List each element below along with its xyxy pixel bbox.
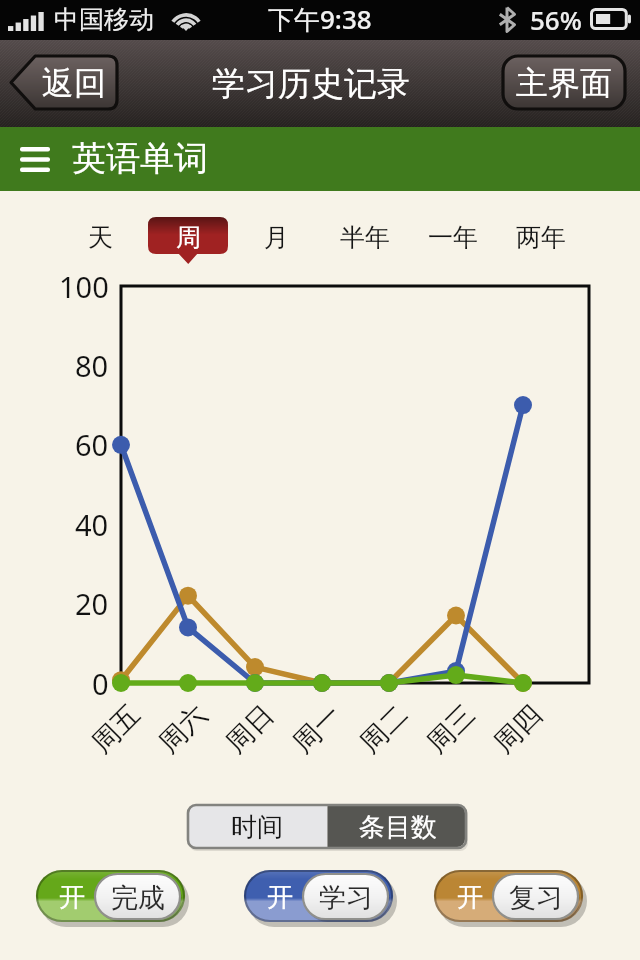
staticText: 中国移动 bbox=[54, 4, 154, 35]
button[interactable]: 主界面 bbox=[501, 54, 627, 111]
staticText: 返回 bbox=[42, 63, 106, 103]
button[interactable]: 月 bbox=[244, 217, 308, 264]
staticText: 下午9:38 bbox=[268, 1, 372, 37]
button[interactable]: 条目数 bbox=[327, 804, 468, 850]
staticText: 条目数 bbox=[359, 811, 437, 844]
button[interactable]: Menu bbox=[8, 132, 62, 186]
button[interactable]: 两年 bbox=[509, 217, 573, 264]
staticText: 复习 bbox=[509, 881, 563, 915]
button[interactable]: 开 bbox=[244, 870, 397, 926]
staticText: 主界面 bbox=[516, 63, 612, 103]
staticText: 时间 bbox=[231, 811, 283, 844]
staticText: 一年 bbox=[428, 222, 478, 253]
staticText: 周 bbox=[176, 222, 201, 253]
button[interactable]: 天 bbox=[68, 217, 132, 264]
button[interactable]: 半年 bbox=[333, 217, 397, 264]
staticText: 开 bbox=[59, 881, 85, 914]
staticText: 月 bbox=[264, 222, 289, 253]
staticText: 学习历史记录 bbox=[212, 63, 410, 105]
button[interactable]: 返回 bbox=[9, 54, 119, 111]
staticText: 56% bbox=[530, 2, 582, 37]
staticText: 英语单词 bbox=[72, 137, 208, 180]
staticText: 开 bbox=[457, 881, 483, 914]
button[interactable]: 时间 bbox=[187, 804, 327, 850]
staticText: 学习 bbox=[319, 881, 373, 915]
staticText: 完成 bbox=[111, 881, 165, 915]
staticText: 半年 bbox=[340, 222, 390, 253]
button[interactable]: 周 bbox=[148, 217, 228, 264]
button[interactable]: 开 bbox=[434, 870, 587, 926]
button[interactable]: 开 bbox=[36, 870, 189, 926]
staticText: 开 bbox=[267, 881, 293, 914]
staticText: 两年 bbox=[516, 222, 566, 253]
staticText: 天 bbox=[88, 222, 113, 253]
button[interactable]: 一年 bbox=[421, 217, 485, 264]
